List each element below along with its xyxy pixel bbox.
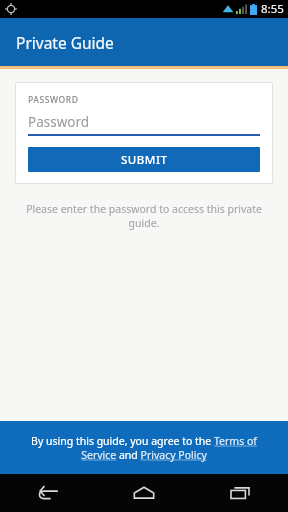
staticText: PASSWORD <box>28 94 79 106</box>
staticText: 8:55 <box>261 1 284 17</box>
staticText: SUBMIT <box>121 152 168 168</box>
button[interactable]: Home <box>96 474 192 512</box>
button[interactable]: Recent apps <box>192 474 288 512</box>
staticText: Please enter the password to access this… <box>24 202 264 230</box>
button[interactable]: By using this guide, you agree to the Te… <box>0 421 288 474</box>
staticText: Private Guide <box>16 32 114 53</box>
staticText: By using this guide, you agree to the Te… <box>18 434 270 462</box>
button[interactable]: Password <box>28 113 260 136</box>
staticText: Password <box>28 113 90 131</box>
button[interactable]: SUBMIT <box>28 147 260 172</box>
button[interactable]: Back <box>0 474 96 512</box>
